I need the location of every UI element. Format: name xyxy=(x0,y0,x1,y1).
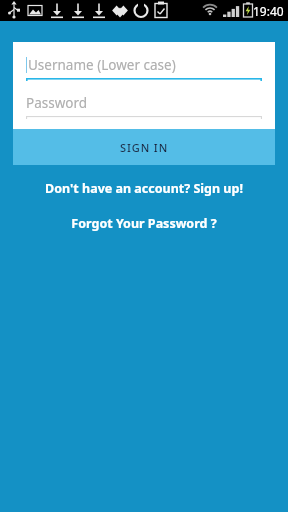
staticText: SIGN IN xyxy=(120,140,169,155)
staticText: Password xyxy=(26,94,88,112)
button[interactable]: Username (Lower case) xyxy=(26,54,262,81)
staticText: 19:40 xyxy=(253,3,284,19)
button[interactable]: SIGN IN xyxy=(13,129,275,165)
button[interactable]: Forgot Your Password ? xyxy=(0,213,288,234)
staticText: Username (Lower case) xyxy=(28,56,176,74)
staticText: Forgot Your Password ? xyxy=(71,215,217,232)
staticText: Don't have an account? Sign up! xyxy=(45,180,243,197)
button[interactable]: Don't have an account? Sign up! xyxy=(0,178,288,199)
button[interactable]: Password xyxy=(26,92,262,119)
